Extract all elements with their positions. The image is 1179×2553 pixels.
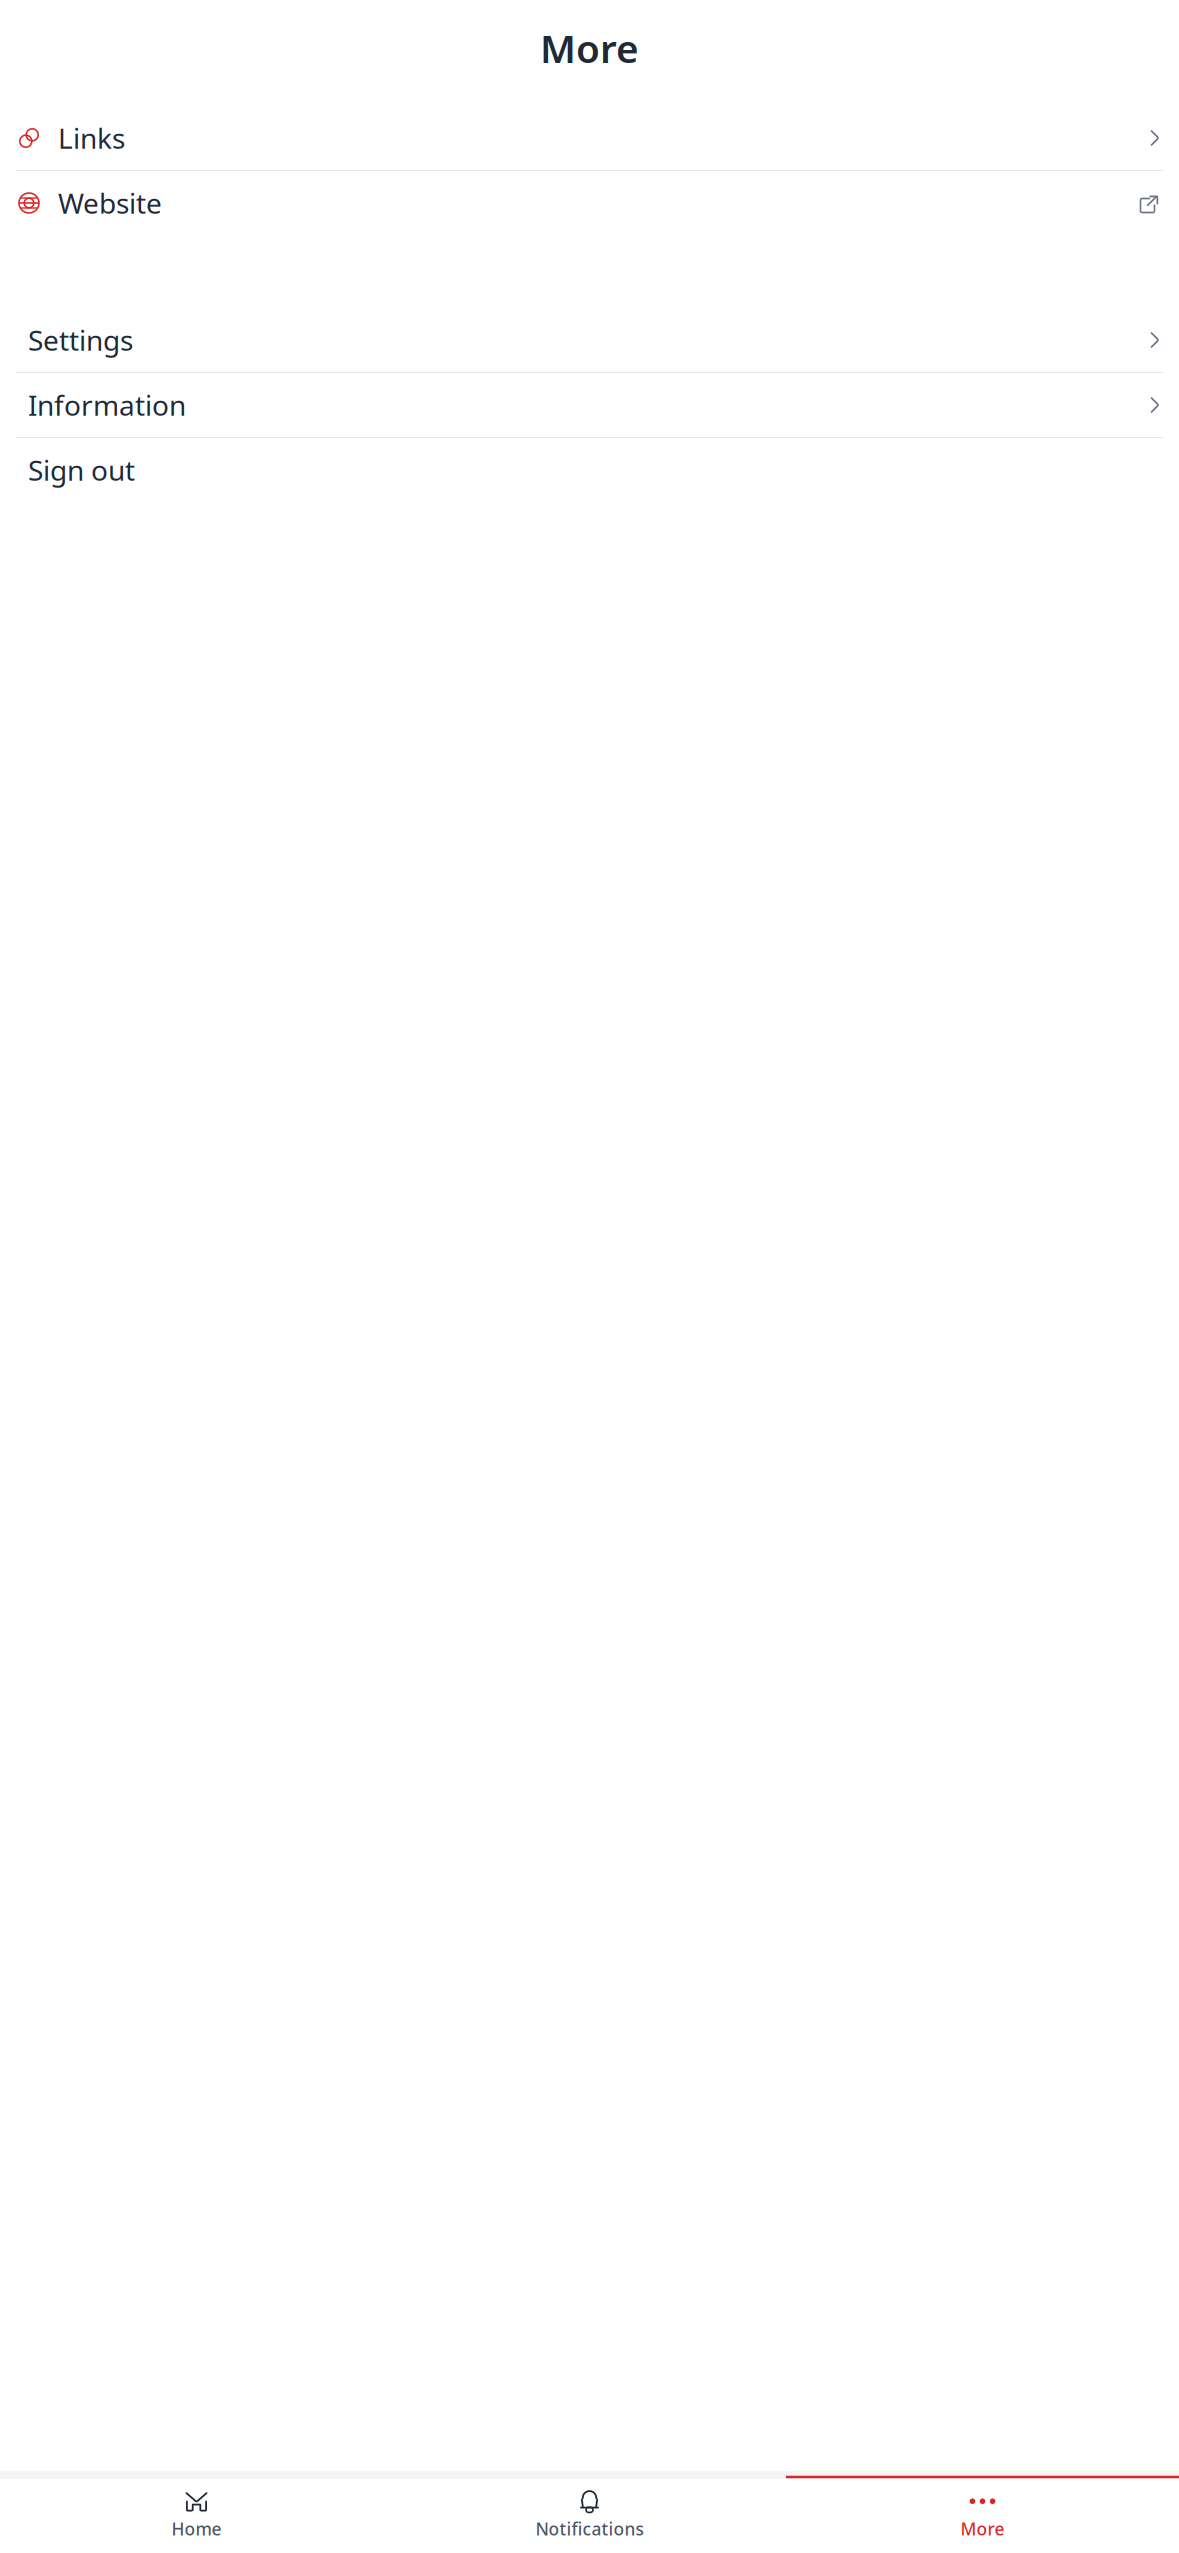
staticText: Settings xyxy=(28,321,133,359)
button[interactable]: Sign out xyxy=(0,438,1179,502)
button[interactable]: Settings xyxy=(0,308,1179,372)
staticText: More xyxy=(960,2517,1004,2540)
button[interactable]: Website xyxy=(0,171,1179,235)
button[interactable]: More xyxy=(786,2479,1179,2545)
button[interactable]: Home xyxy=(0,2479,393,2545)
staticText: Information xyxy=(28,386,186,424)
staticText: Home xyxy=(171,2517,221,2540)
staticText: Website xyxy=(58,184,162,222)
staticText: More xyxy=(540,22,639,74)
staticText: Sign out xyxy=(28,451,135,489)
button[interactable]: Links xyxy=(0,106,1179,170)
button[interactable]: Information xyxy=(0,373,1179,437)
staticText: Links xyxy=(58,119,125,157)
staticText: Notifications xyxy=(535,2517,643,2540)
button[interactable]: Notifications xyxy=(393,2479,786,2545)
